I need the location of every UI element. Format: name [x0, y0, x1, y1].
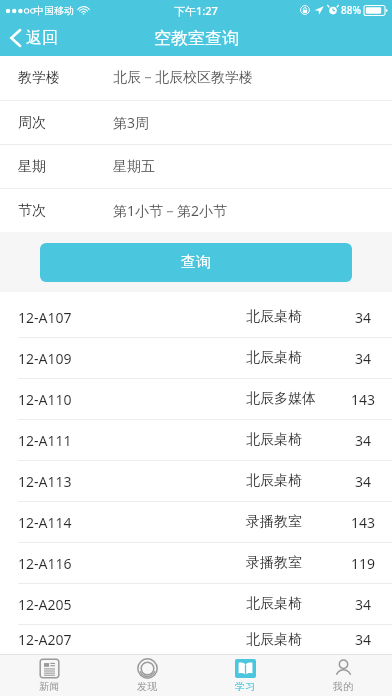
staticText: 北辰桌椅 — [246, 431, 334, 449]
staticText: 我的 — [333, 680, 353, 693]
staticText: 周次 — [18, 114, 113, 132]
staticText: 34 — [334, 431, 392, 450]
other: 学习 — [235, 658, 256, 679]
button[interactable]: 12-A114 — [0, 502, 392, 542]
button[interactable]: 返回 — [0, 24, 70, 52]
staticText: 34 — [334, 595, 392, 614]
staticText: 节次 — [18, 202, 113, 220]
staticText: 12-A107 — [18, 308, 72, 327]
button[interactable]: 星期 — [0, 145, 392, 188]
staticText: 发现 — [137, 680, 157, 693]
button[interactable]: 周次 — [0, 101, 392, 144]
staticText: 北辰桌椅 — [246, 349, 334, 367]
button[interactable]: 12-A111 — [0, 420, 392, 460]
button[interactable]: 学习 — [196, 655, 294, 696]
button[interactable]: 新闻 — [0, 655, 98, 696]
staticText: 返回 — [26, 28, 58, 48]
staticText: 下午1:27 — [174, 3, 218, 18]
staticText: 查询 — [181, 253, 211, 272]
staticText: 北辰桌椅 — [246, 631, 334, 649]
button[interactable]: 发现 — [98, 655, 196, 696]
staticText: 88% — [341, 3, 361, 17]
button[interactable]: 节次 — [0, 189, 392, 232]
staticText: 教学楼 — [18, 69, 113, 87]
staticText: 34 — [334, 630, 392, 649]
staticText: 录播教室 — [246, 554, 334, 572]
staticText: 第3周 — [113, 113, 150, 132]
staticText: 新闻 — [39, 680, 59, 693]
button[interactable]: 12-A109 — [0, 338, 392, 378]
staticText: 第1小节－第2小节 — [113, 201, 228, 220]
button[interactable]: 12-A205 — [0, 584, 392, 624]
staticText: 34 — [334, 349, 392, 368]
button[interactable]: 查询 — [40, 243, 352, 282]
staticText: 录播教室 — [246, 513, 334, 531]
staticText: 12-A110 — [18, 390, 72, 409]
staticText: 119 — [334, 554, 392, 573]
staticText: 143 — [334, 390, 392, 409]
staticText: 空教室查询 — [154, 28, 239, 49]
staticText: 12-A109 — [18, 349, 72, 368]
staticText: 学习 — [235, 680, 255, 693]
staticText: 12-A207 — [18, 630, 72, 649]
button[interactable]: 12-A116 — [0, 543, 392, 583]
button[interactable]: 我的 — [294, 655, 392, 696]
staticText: 北辰桌椅 — [246, 308, 334, 326]
staticText: 北辰桌椅 — [246, 472, 334, 490]
other: 发现 — [137, 658, 158, 679]
button[interactable]: 教学楼 — [0, 56, 392, 100]
staticText: 12-A205 — [18, 595, 72, 614]
staticText: 34 — [334, 308, 392, 327]
other: 新闻 — [39, 658, 60, 679]
button[interactable]: 12-A110 — [0, 379, 392, 419]
other: 我的 — [333, 658, 354, 679]
button[interactable]: 12-A113 — [0, 461, 392, 501]
staticText: 12-A116 — [18, 554, 72, 573]
staticText: 12-A113 — [18, 472, 72, 491]
staticText: 星期 — [18, 158, 113, 176]
staticText: 12-A111 — [18, 431, 72, 450]
staticText: 北辰多媒体 — [246, 390, 334, 408]
staticText: 中国移动 — [34, 4, 74, 17]
button[interactable]: 12-A107 — [0, 297, 392, 337]
staticText: 12-A114 — [18, 513, 72, 532]
button[interactable]: 12-A207 — [0, 625, 392, 654]
staticText: 34 — [334, 472, 392, 491]
staticText: 星期五 — [113, 158, 155, 176]
staticText: 143 — [334, 513, 392, 532]
staticText: 北辰桌椅 — [246, 595, 334, 613]
staticText: 北辰－北辰校区教学楼 — [113, 69, 253, 87]
